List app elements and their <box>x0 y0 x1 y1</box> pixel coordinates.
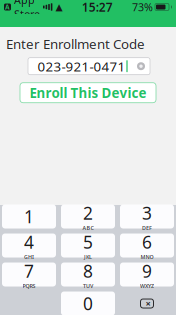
button[interactable]: 7 <box>2 262 56 286</box>
button[interactable]: Enroll This Device <box>20 83 156 103</box>
staticText: 5 <box>83 230 93 253</box>
staticText: A <box>5 3 10 11</box>
button[interactable]: 4 <box>2 233 56 257</box>
staticText: 9 <box>142 259 152 282</box>
staticText: MNO <box>140 253 153 261</box>
button[interactable]: 9 <box>120 262 174 286</box>
staticText: 6 <box>142 230 152 253</box>
button[interactable]: 5 <box>61 233 115 257</box>
staticText: Enter Enrollment Code <box>6 35 145 53</box>
staticText: App Store <box>14 0 40 21</box>
button[interactable]: 8 <box>61 262 115 286</box>
button[interactable]: 2 <box>61 204 115 228</box>
button[interactable]: 023-921-0471 <box>28 58 150 75</box>
staticText: 73% <box>132 0 153 14</box>
staticText: GHI <box>24 253 34 261</box>
staticText: 4 <box>24 230 34 253</box>
staticText: ABC <box>82 224 93 232</box>
staticText: 0 <box>83 292 93 315</box>
staticText: 3 <box>142 201 152 224</box>
button[interactable]: 3 <box>120 204 174 228</box>
button[interactable]: 6 <box>120 233 174 257</box>
staticText: 15:27 <box>82 0 113 15</box>
button[interactable]: 1 <box>2 204 56 228</box>
button[interactable]: Delete <box>120 291 174 315</box>
staticText: PQRS <box>22 282 35 290</box>
staticText: 8 <box>83 259 93 282</box>
staticText: JKL <box>84 253 92 261</box>
staticText: ▲ <box>55 2 62 12</box>
staticText: 1 <box>24 205 34 228</box>
staticText: 2 <box>83 201 93 224</box>
staticText: WXYZ <box>140 282 154 290</box>
staticText: TUV <box>83 282 93 290</box>
staticText: × <box>145 297 150 310</box>
staticText: 7 <box>24 259 34 282</box>
staticText: DEF <box>142 224 152 232</box>
button[interactable]: 0 <box>61 291 115 315</box>
staticText: Enroll This Device <box>29 84 146 102</box>
staticText: 023-921-0471 <box>37 57 125 75</box>
